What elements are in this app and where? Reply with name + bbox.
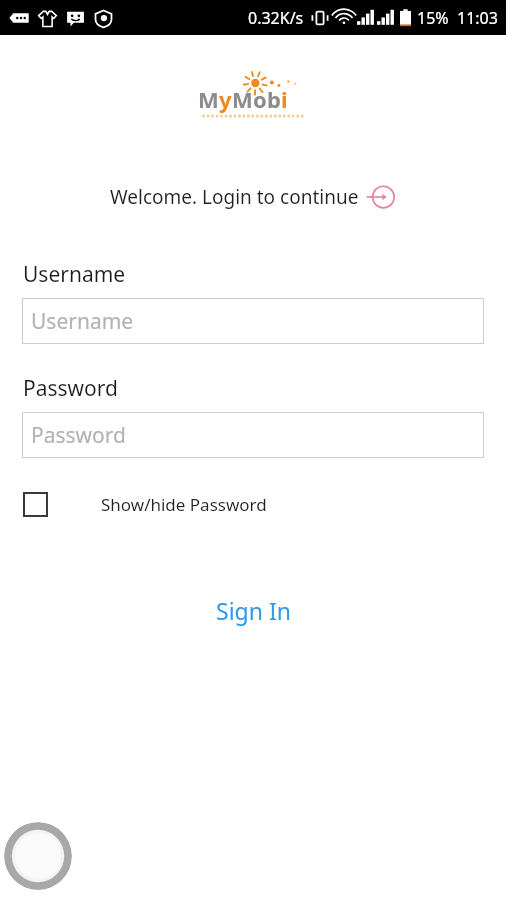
staticText: 11:03: [457, 7, 498, 29]
staticText: Show/hide Password: [101, 493, 267, 516]
staticText: Sign In: [216, 595, 291, 626]
button[interactable]: Assistive touch: [4, 822, 72, 890]
button[interactable]: Username: [22, 298, 484, 344]
staticText: Username: [31, 307, 134, 336]
staticText: M: [232, 84, 253, 114]
staticText: y: [219, 84, 232, 114]
staticText: Welcome. Login to continue: [110, 184, 359, 210]
staticText: i: [281, 84, 288, 114]
staticText: Password: [23, 374, 118, 403]
button[interactable]: Show/hide Password: [23, 492, 267, 517]
staticText: b: [267, 84, 281, 114]
staticText: Username: [23, 260, 126, 289]
staticText: 15%: [417, 7, 449, 29]
button[interactable]: Sign In: [200, 589, 307, 632]
staticText: o: [253, 84, 267, 114]
staticText: Password: [31, 421, 126, 450]
staticText: 0.32K/s: [248, 7, 304, 29]
staticText: M: [198, 84, 219, 114]
button[interactable]: Password: [22, 412, 484, 458]
